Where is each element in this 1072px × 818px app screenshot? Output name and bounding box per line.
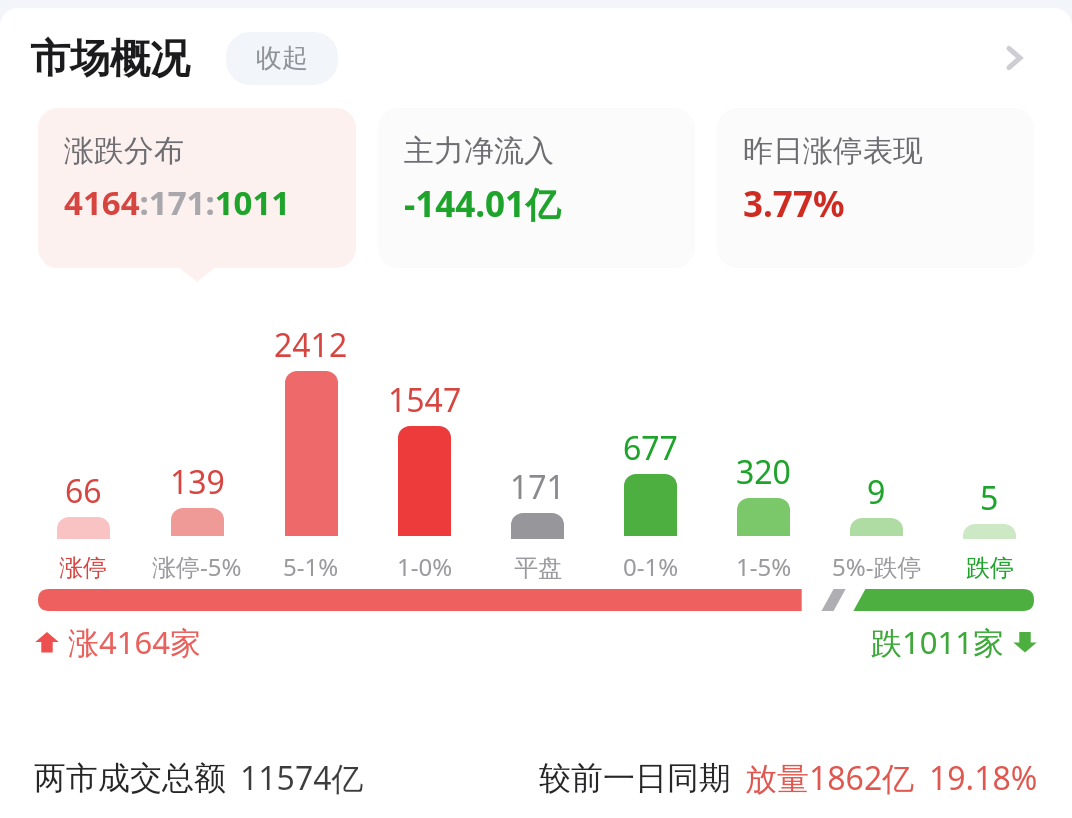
staticText: 涨跌分布	[64, 132, 184, 170]
button[interactable]: 主力净流入	[378, 108, 695, 268]
button[interactable]: 171	[481, 465, 594, 583]
staticText: 3.77%	[743, 180, 845, 228]
button[interactable]: 收起	[226, 32, 338, 85]
staticText: 平盘	[514, 553, 562, 583]
staticText: 主力净流入	[404, 132, 554, 170]
staticText: 跌停	[966, 553, 1014, 583]
button[interactable]: 320	[707, 450, 820, 583]
staticText: 涨停	[59, 553, 107, 583]
staticText: 320	[736, 450, 791, 494]
button[interactable]: 2412	[254, 323, 368, 583]
button[interactable]: 66	[26, 469, 140, 583]
staticText: 跌1011家	[871, 621, 1004, 663]
staticText: 0-1%	[623, 550, 679, 583]
button[interactable]: 涨跌分布	[38, 108, 356, 268]
button[interactable]: 昨日涨停表现	[717, 108, 1034, 268]
staticText: 市场概况	[30, 33, 190, 83]
button[interactable]: 1547	[368, 378, 481, 583]
button[interactable]: 涨4164家	[34, 621, 201, 663]
button[interactable]: 5	[933, 476, 1046, 583]
staticText: 2412	[274, 323, 348, 367]
staticText: 11574亿	[240, 756, 364, 800]
button[interactable]: 更多	[986, 30, 1042, 86]
button[interactable]: 9	[820, 470, 933, 583]
staticText: 66	[65, 469, 102, 513]
staticText: 9	[867, 470, 886, 514]
staticText: 放量1862亿	[745, 756, 915, 800]
staticText: 5%-跌停	[832, 550, 922, 583]
staticText: 5-1%	[283, 550, 339, 583]
staticText: 1-5%	[736, 550, 792, 583]
staticText: 涨停-5%	[152, 550, 242, 583]
staticText: 4164:171:1011	[64, 180, 291, 225]
staticText: -144.01亿	[404, 180, 561, 228]
staticText: 677	[623, 426, 678, 470]
button[interactable]: 139	[140, 460, 254, 583]
staticText: 171	[510, 465, 565, 509]
staticText: 1-0%	[397, 550, 453, 583]
staticText: 涨4164家	[68, 621, 201, 663]
staticText: 139	[170, 460, 225, 504]
staticText: 5	[980, 476, 999, 520]
staticText: 收起	[256, 42, 308, 75]
staticText: 两市成交总额	[34, 758, 226, 798]
button[interactable]: 跌1011家	[871, 621, 1038, 663]
button[interactable]: 677	[594, 426, 707, 583]
staticText: 19.18%	[929, 756, 1038, 800]
staticText: 较前一日同期	[539, 758, 731, 798]
staticText: 1547	[388, 378, 462, 422]
staticText: 昨日涨停表现	[743, 132, 923, 170]
